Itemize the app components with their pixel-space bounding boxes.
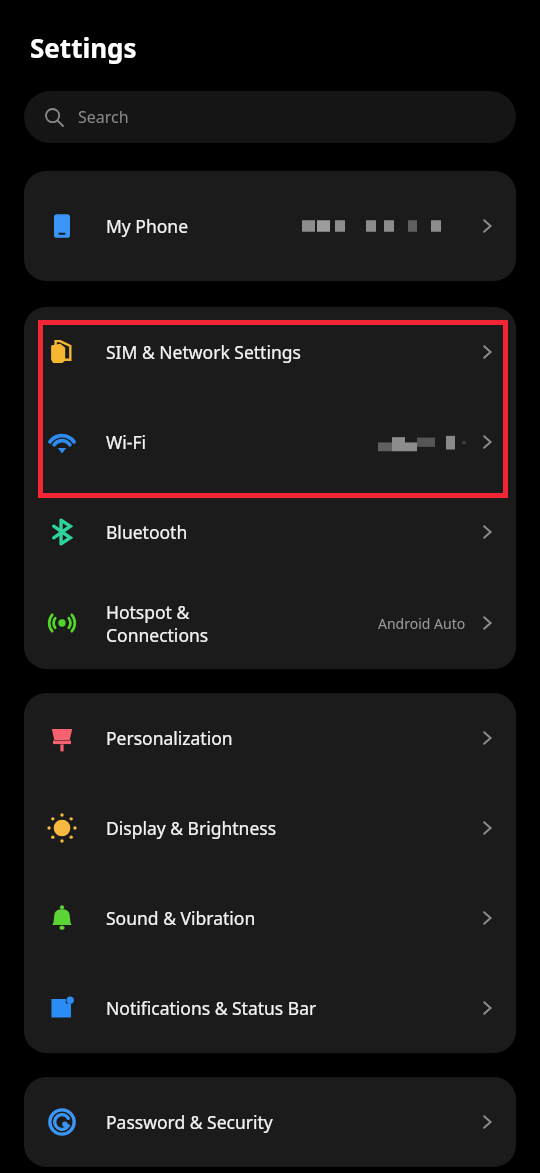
- staticText: Android Auto: [378, 614, 466, 633]
- other: Bluetooth: [46, 516, 78, 548]
- button[interactable]: My Phone: [24, 171, 516, 281]
- staticText: Notifications & Status Bar: [106, 996, 478, 1020]
- other: SIM: [46, 336, 78, 368]
- staticText: Personalization: [106, 726, 478, 750]
- staticText: Hotspot & Connections: [106, 600, 378, 647]
- button[interactable]: SIM: [24, 307, 516, 397]
- other: Sound: [46, 902, 78, 934]
- button[interactable]: Bluetooth: [24, 487, 516, 577]
- staticText: My Phone: [106, 214, 298, 238]
- button[interactable]: Hotspot: [24, 577, 516, 669]
- other: Hotspot: [46, 607, 78, 639]
- staticText: Sound & Vibration: [106, 906, 478, 930]
- staticText: Settings: [30, 30, 137, 65]
- staticText: SIM & Network Settings: [106, 340, 478, 364]
- button[interactable]: Personalization: [24, 693, 516, 783]
- other: Personalization: [46, 722, 78, 754]
- other: Notifications: [46, 992, 78, 1024]
- staticText: Password & Security: [106, 1110, 478, 1134]
- button[interactable]: Security: [24, 1077, 516, 1167]
- other: My Phone: [46, 210, 78, 242]
- staticText: Bluetooth: [106, 520, 478, 544]
- button[interactable]: Search: [24, 91, 516, 143]
- staticText: Search: [78, 106, 129, 128]
- other: Wi-Fi: [46, 426, 78, 458]
- button[interactable]: Wi-Fi: [24, 397, 516, 487]
- other: Display: [46, 812, 78, 844]
- staticText: Wi-Fi: [106, 430, 372, 454]
- button[interactable]: Notifications: [24, 963, 516, 1053]
- button[interactable]: Sound: [24, 873, 516, 963]
- staticText: Display & Brightness: [106, 816, 478, 840]
- other: Security: [46, 1106, 78, 1138]
- button[interactable]: Display: [24, 783, 516, 873]
